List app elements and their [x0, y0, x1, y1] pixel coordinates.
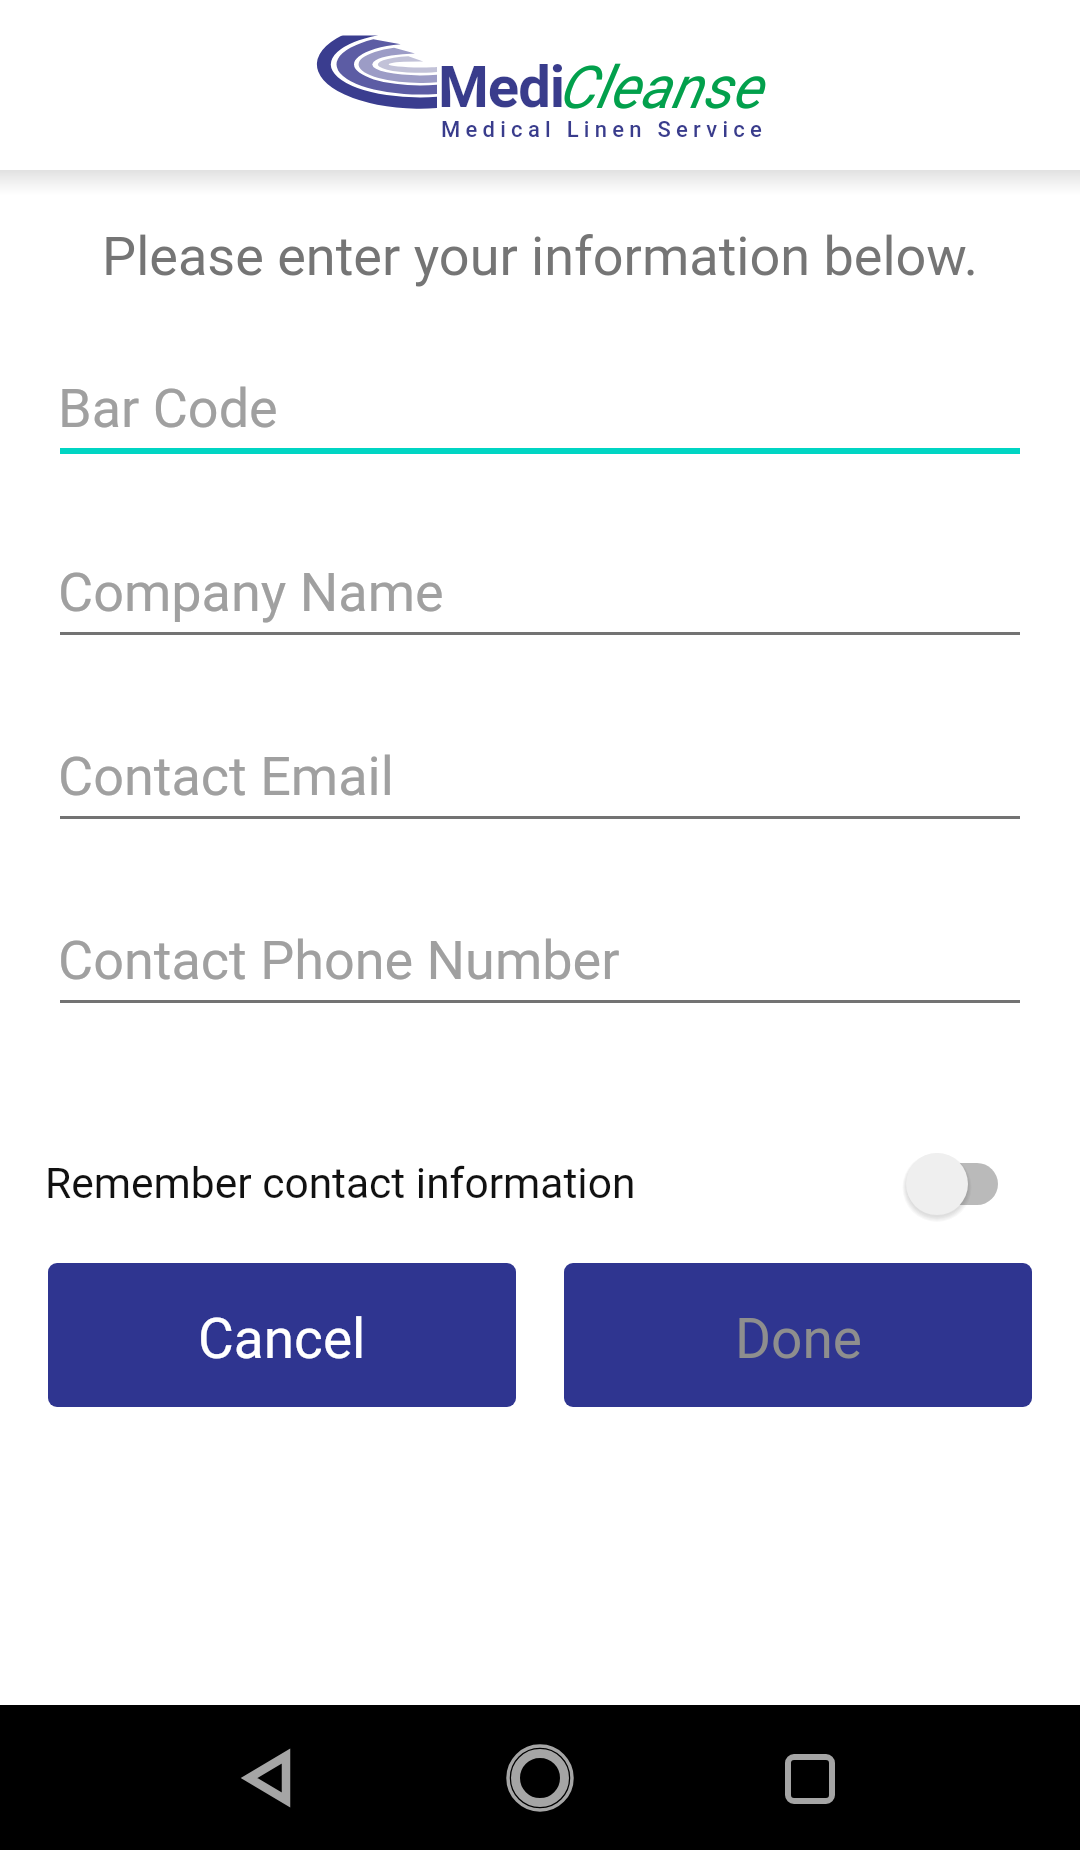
button[interactable]: Back	[220, 1728, 320, 1828]
button[interactable]: Done	[564, 1263, 1032, 1407]
staticText: Medi	[438, 53, 565, 121]
button[interactable]: Contact Phone Number	[0, 880, 1080, 1006]
button[interactable]: Company Name	[0, 512, 1080, 638]
staticText: Done	[735, 1307, 862, 1371]
staticText: Cancel	[198, 1307, 366, 1371]
staticText: Bar Code	[58, 377, 278, 440]
button[interactable]: Bar Code	[0, 328, 1080, 454]
button[interactable]: Cancel	[48, 1263, 516, 1407]
staticText: Please enter your information below.	[0, 225, 1080, 288]
button[interactable]: Remember contact information toggle	[902, 1149, 998, 1219]
staticText: Contact Email	[58, 745, 394, 808]
button[interactable]: Contact Email	[0, 696, 1080, 822]
button[interactable]: Home	[490, 1728, 590, 1828]
staticText: Medical Linen Service	[441, 117, 768, 143]
staticText: Cleanse	[558, 53, 763, 122]
staticText: Contact Phone Number	[58, 929, 620, 992]
button[interactable]: Remember contact information	[0, 1134, 1080, 1234]
staticText: Remember contact information	[45, 1159, 636, 1209]
staticText: Company Name	[58, 561, 444, 624]
button[interactable]: Recent apps	[760, 1728, 860, 1828]
